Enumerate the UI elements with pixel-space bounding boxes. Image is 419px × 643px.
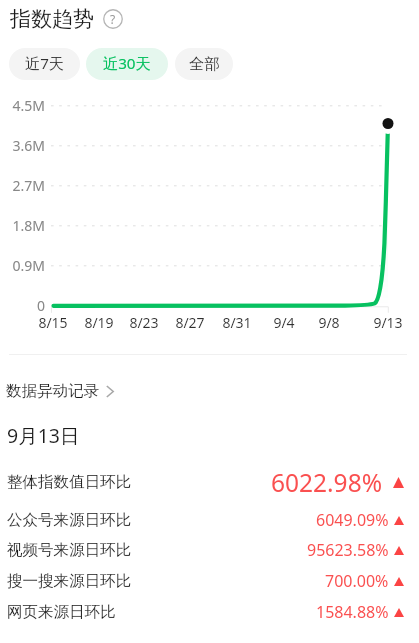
- button[interactable]: 近7天: [9, 48, 80, 80]
- staticText: 搜一搜来源日环比: [7, 571, 131, 591]
- staticText: ?: [110, 11, 116, 27]
- staticText: 数据异动记录: [6, 381, 99, 401]
- staticText: 9/8: [304, 313, 354, 332]
- staticText: 1584.88%: [316, 601, 389, 623]
- button[interactable]: 视频号来源日环比: [0, 534, 419, 566]
- staticText: 8/31: [212, 313, 262, 332]
- staticText: 8/15: [28, 313, 78, 332]
- staticText: 700.00%: [325, 570, 389, 592]
- staticText: 4.5M: [0, 96, 45, 115]
- staticText: 9/4: [259, 313, 309, 332]
- staticText: 8/23: [119, 313, 169, 332]
- button[interactable]: 网页来源日环比: [0, 596, 419, 628]
- staticText: 8/27: [165, 313, 215, 332]
- staticText: 近7天: [25, 53, 65, 74]
- staticText: 8/19: [74, 313, 124, 332]
- staticText: 0.9M: [0, 256, 45, 275]
- staticText: 全部: [189, 54, 220, 73]
- staticText: 0: [0, 296, 45, 315]
- staticText: 近30天: [103, 53, 151, 74]
- staticText: 6022.98%: [271, 466, 383, 498]
- button[interactable]: 公众号来源日环比: [0, 504, 419, 536]
- staticText: 3.6M: [0, 136, 45, 155]
- staticText: 整体指数值日环比: [7, 472, 131, 492]
- staticText: 2.7M: [0, 176, 45, 195]
- button[interactable]: 整体指数值日环比: [0, 466, 419, 498]
- staticText: 1.8M: [0, 216, 45, 235]
- staticText: 指数趋势: [10, 6, 94, 32]
- staticText: 6049.09%: [316, 509, 389, 531]
- button[interactable]: 近30天: [86, 48, 168, 80]
- button[interactable]: 数据异动记录: [0, 378, 124, 404]
- staticText: 公众号来源日环比: [7, 510, 131, 530]
- button[interactable]: 帮助: [103, 9, 123, 29]
- staticText: 视频号来源日环比: [7, 540, 131, 560]
- staticText: 网页来源日环比: [7, 602, 116, 622]
- button[interactable]: 全部: [175, 48, 233, 80]
- staticText: 9月13日: [7, 422, 80, 449]
- button[interactable]: 搜一搜来源日环比: [0, 565, 419, 597]
- staticText: 95623.58%: [307, 539, 389, 561]
- staticText: 9/13: [363, 313, 413, 332]
